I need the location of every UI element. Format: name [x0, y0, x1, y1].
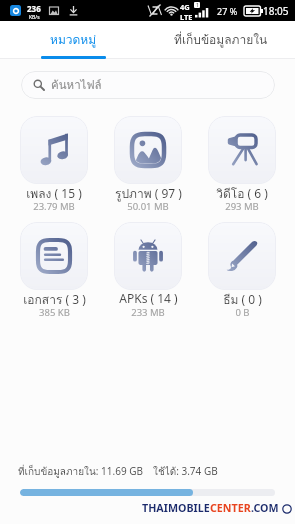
staticText: KB/s — [29, 14, 40, 21]
button[interactable]: ที่เก็บข้อมูลภายใน — [147, 21, 295, 58]
staticText: THAIMOBILE — [142, 501, 210, 516]
staticText: .COM — [251, 501, 279, 516]
staticText: 293 MB — [225, 200, 259, 213]
staticText: 236 — [27, 3, 41, 14]
staticText: 233 MB — [131, 306, 165, 319]
staticText: หมวดหมู่ — [50, 30, 97, 49]
button[interactable]: APKs ( 14 ) — [101, 222, 195, 320]
staticText: ที่เก็บข้อมูลภายใน: 11.69 GB — [18, 464, 143, 480]
button[interactable]: เพลง ( 15 ) — [7, 116, 101, 214]
staticText: 23.79 MB — [33, 200, 75, 213]
staticText: เอกสาร ( 3 ) — [23, 290, 86, 309]
button[interactable]: รูปภาพ ( 97 ) — [101, 116, 195, 214]
staticText: ธีม ( 0 ) — [223, 290, 262, 309]
staticText: รูปภาพ ( 97 ) — [115, 184, 182, 203]
staticText: LTE — [180, 12, 193, 22]
staticText: ที่เก็บข้อมูลภายใน — [174, 30, 268, 49]
button[interactable]: หมวดหมู่ — [0, 21, 147, 58]
button[interactable]: ค้นหาไฟล์ — [21, 71, 275, 99]
staticText: CENTER — [210, 501, 251, 516]
staticText: 18:05 — [263, 4, 289, 18]
staticText: ใช้ได้: 3.74 GB — [153, 464, 218, 480]
staticText: ค้นหาไฟล์ — [51, 76, 102, 94]
staticText: 4G — [180, 2, 190, 12]
staticText: 1 — [196, 2, 199, 8]
button[interactable]: วิดีโอ ( 6 ) — [195, 116, 289, 214]
staticText: เพลง ( 15 ) — [26, 184, 82, 203]
button[interactable]: เอกสาร ( 3 ) — [7, 222, 101, 320]
staticText: วิดีโอ ( 6 ) — [216, 184, 268, 203]
staticText: 50.01 MB — [127, 200, 169, 213]
button[interactable]: ธีม ( 0 ) — [195, 222, 289, 320]
staticText: 0 B — [235, 306, 250, 319]
staticText: 385 KB — [39, 306, 70, 319]
staticText: APKs ( 14 ) — [119, 290, 178, 306]
staticText: 27 % — [217, 5, 238, 17]
